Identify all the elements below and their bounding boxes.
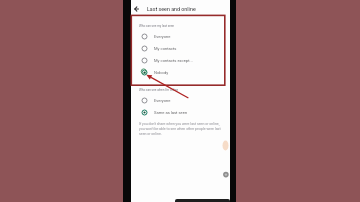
- staticText: Everyone: [154, 34, 171, 39]
- button[interactable]: Everyone: [131, 94, 230, 106]
- staticText: If you don't share when you were last se…: [139, 122, 221, 136]
- button[interactable]: Same as last seen: [131, 106, 230, 118]
- staticText: Nobody: [154, 70, 169, 75]
- staticText: Who can see when I'm online: [139, 88, 179, 92]
- button[interactable]: Everyone: [131, 30, 230, 42]
- staticText: My contacts except...: [154, 58, 193, 63]
- button[interactable]: Nobody: [131, 66, 230, 78]
- button[interactable]: Back: [133, 5, 141, 13]
- staticText: Last seen and online: [147, 6, 196, 12]
- staticText: Everyone: [154, 98, 171, 103]
- staticText: My contacts: [154, 46, 177, 51]
- staticText: Same as last seen: [154, 110, 188, 115]
- staticText: Who can see my last seen: [139, 24, 175, 28]
- button[interactable]: My contacts: [131, 42, 230, 54]
- button[interactable]: My contacts except...: [131, 54, 230, 66]
